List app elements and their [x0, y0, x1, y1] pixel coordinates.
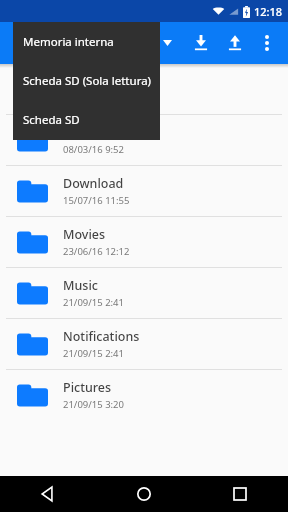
button[interactable]: Pictures	[0, 370, 288, 420]
staticText: Pictures	[63, 379, 112, 396]
staticText: 08/03/16 9:52	[63, 143, 124, 156]
staticText: 12:18	[254, 4, 283, 19]
button[interactable]: Scheda SD	[13, 100, 160, 139]
button[interactable]: Recents	[192, 476, 288, 512]
staticText: Scheda SD	[23, 112, 80, 128]
button[interactable]: Home	[96, 476, 192, 512]
staticText: Scheda SD (Sola lettura)	[23, 73, 152, 89]
staticText: DCIM	[63, 124, 96, 141]
button[interactable]: Notifications	[0, 319, 288, 369]
button[interactable]: More options	[252, 28, 282, 58]
button[interactable]: Select storage	[154, 30, 180, 56]
staticText: Memoria interna	[23, 34, 114, 50]
button[interactable]: Music	[0, 268, 288, 318]
button[interactable]: DCIM	[0, 115, 288, 165]
button[interactable]: Back	[0, 476, 96, 512]
staticText: Music	[63, 277, 98, 294]
button[interactable]: Movies	[0, 217, 288, 267]
staticText: 21/09/15 2:41	[63, 296, 124, 309]
staticText: Android	[63, 73, 111, 90]
staticText: Notifications	[63, 328, 140, 345]
button[interactable]: Download	[0, 166, 288, 216]
staticText: 21/09/15 3:20	[63, 398, 124, 411]
button[interactable]: Scheda SD (Sola lettura)	[13, 61, 160, 100]
staticText: 15/07/16 11:55	[63, 194, 130, 207]
staticText: Download	[63, 175, 124, 192]
button[interactable]: Download	[186, 28, 216, 58]
button[interactable]: Memoria interna	[13, 22, 160, 61]
staticText: 21/09/15 2:41	[63, 347, 124, 360]
button[interactable]: Android	[0, 64, 288, 114]
staticText: Movies	[63, 226, 106, 243]
button[interactable]: Upload	[220, 28, 250, 58]
staticText: 23/06/16 12:12	[63, 245, 130, 258]
